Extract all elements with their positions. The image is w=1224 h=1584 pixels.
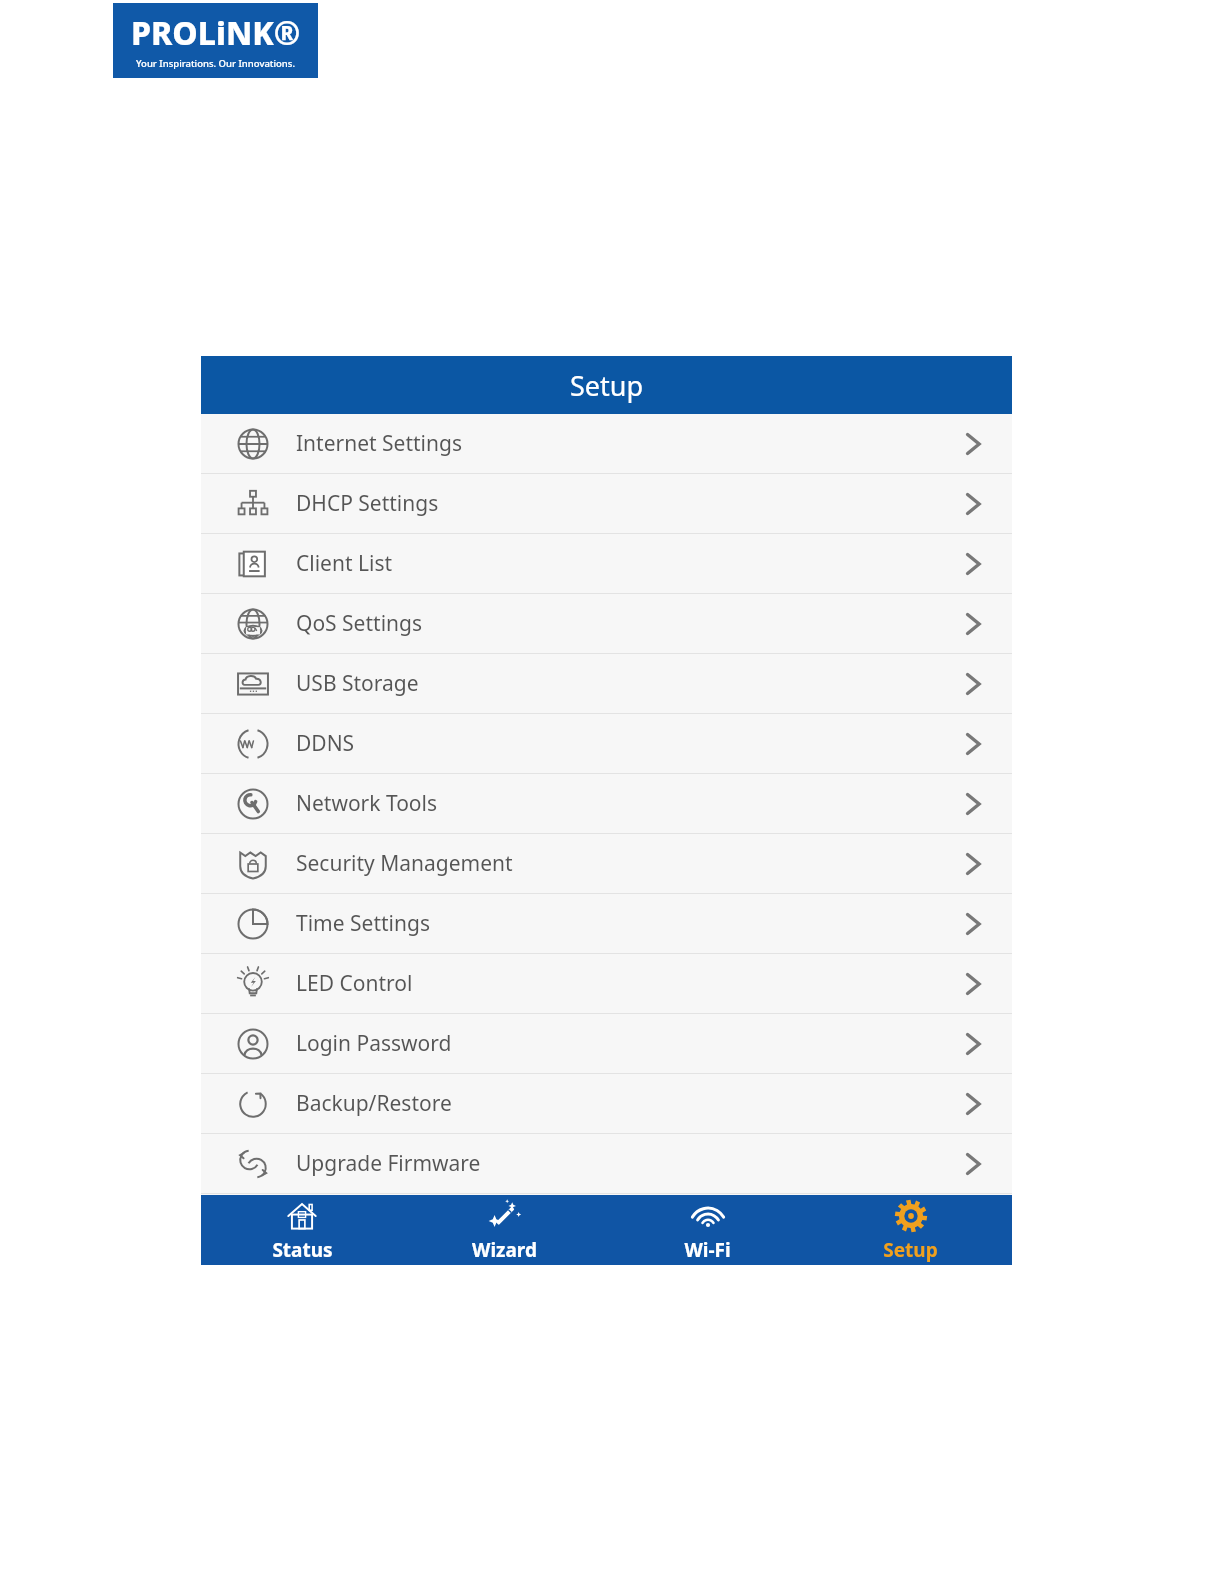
button[interactable]: Wi-Fi — [606, 1195, 809, 1265]
staticText: DDNS — [296, 729, 355, 758]
button[interactable]: Setup — [809, 1195, 1012, 1265]
staticText: Security Management — [296, 849, 513, 878]
staticText: Setup — [883, 1237, 938, 1263]
button[interactable]: Security Management — [201, 834, 1012, 894]
button[interactable]: Login Password — [201, 1014, 1012, 1074]
staticText: Backup/Restore — [296, 1089, 452, 1118]
staticText: Wi-Fi — [684, 1237, 731, 1263]
button[interactable]: DDNS — [201, 714, 1012, 774]
button[interactable]: Time Settings — [201, 894, 1012, 954]
button[interactable]: USB Storage — [201, 654, 1012, 714]
button[interactable]: Upgrade Firmware — [201, 1134, 1012, 1194]
button[interactable]: Wizard — [403, 1195, 606, 1265]
staticText: Time Settings — [296, 909, 430, 938]
button[interactable]: LED Control — [201, 954, 1012, 1014]
staticText: PROLiNK® — [131, 11, 301, 55]
button[interactable]: QoS Settings — [201, 594, 1012, 654]
button[interactable]: Backup/Restore — [201, 1074, 1012, 1134]
button[interactable]: Network Tools — [201, 774, 1012, 834]
staticText: DHCP Settings — [296, 489, 439, 518]
staticText: Network Tools — [296, 789, 438, 818]
staticText: LED Control — [296, 969, 413, 998]
staticText: Login Password — [296, 1029, 452, 1058]
staticText: Client List — [296, 549, 393, 578]
button[interactable]: DHCP Settings — [201, 474, 1012, 534]
staticText: Status — [272, 1237, 333, 1263]
staticText: Setup — [570, 367, 644, 404]
button[interactable]: Status — [201, 1195, 403, 1265]
staticText: Internet Settings — [296, 429, 462, 458]
staticText: QoS Settings — [296, 609, 422, 638]
staticText: USB Storage — [296, 669, 419, 698]
button[interactable]: Client List — [201, 534, 1012, 594]
staticText: Your Inspirations. Our Innovations. — [136, 57, 296, 70]
staticText: Upgrade Firmware — [296, 1149, 481, 1178]
staticText: Wizard — [472, 1237, 537, 1263]
button[interactable]: Internet Settings — [201, 414, 1012, 474]
